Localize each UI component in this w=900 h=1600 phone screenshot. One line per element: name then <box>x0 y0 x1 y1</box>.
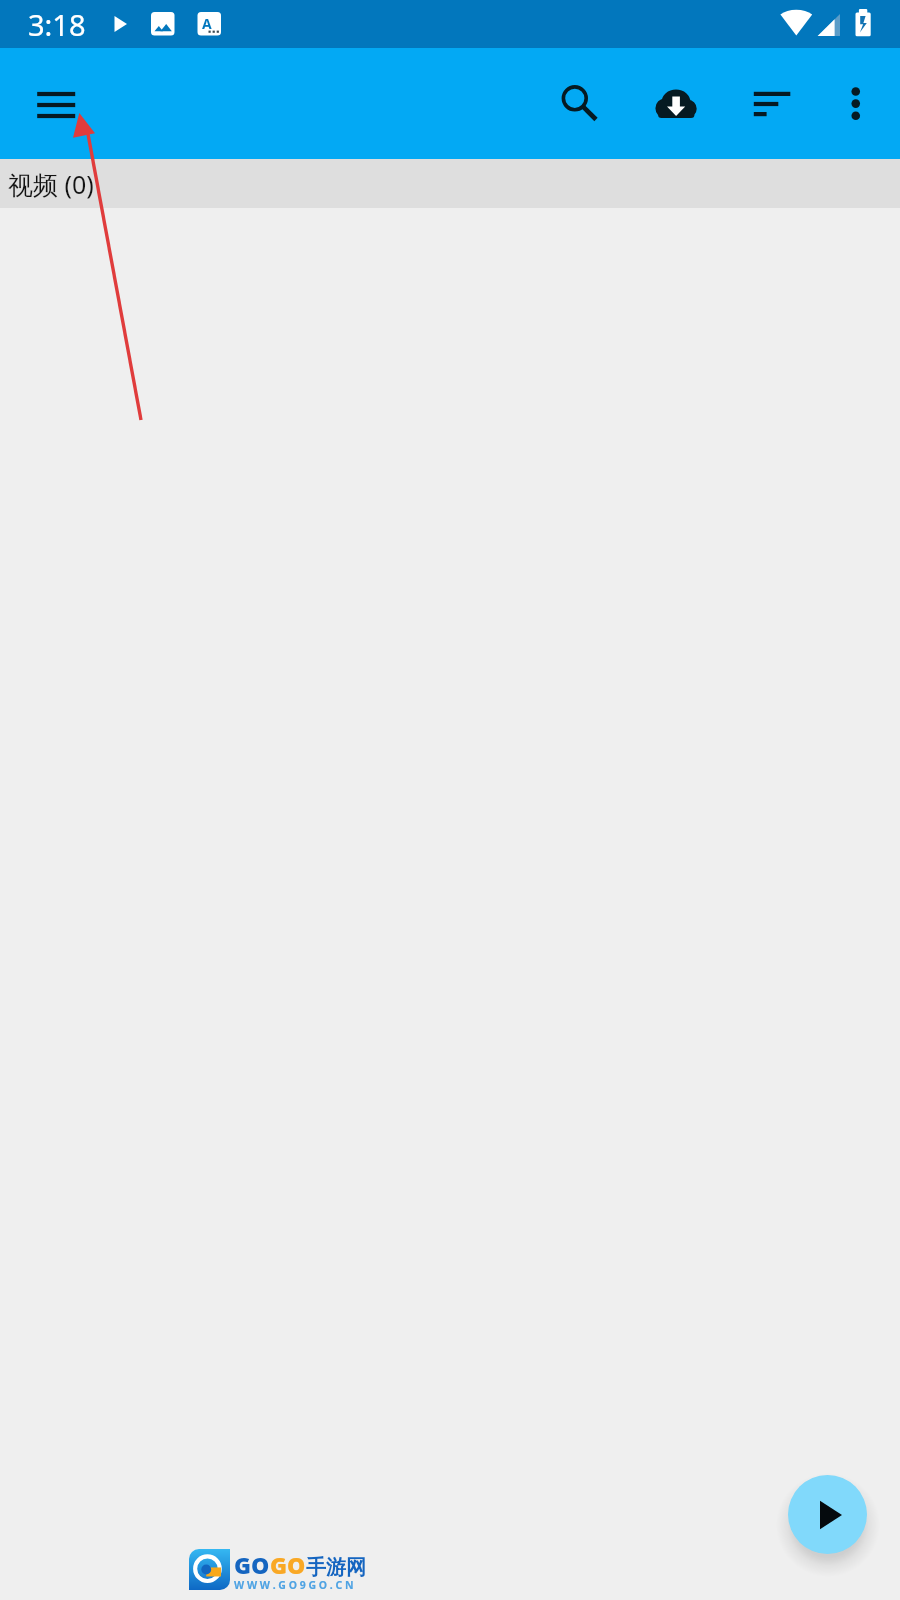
staticText: A <box>202 14 212 33</box>
staticText: 3:18 <box>28 5 86 44</box>
button[interactable]: Download <box>641 64 711 144</box>
button[interactable]: More options <box>821 64 891 144</box>
staticText: 手游网 <box>306 1555 366 1580</box>
button[interactable]: Play <box>788 1475 867 1554</box>
staticText: W W W . G O 9 G O . C N <box>234 1578 354 1592</box>
button[interactable]: Navigation menu <box>10 65 102 143</box>
staticText: GO <box>270 1549 306 1580</box>
staticText: GO <box>234 1549 270 1580</box>
staticText: 视频 (0) <box>8 167 94 201</box>
button[interactable]: Search <box>540 64 610 144</box>
button[interactable]: Sort <box>737 64 807 144</box>
